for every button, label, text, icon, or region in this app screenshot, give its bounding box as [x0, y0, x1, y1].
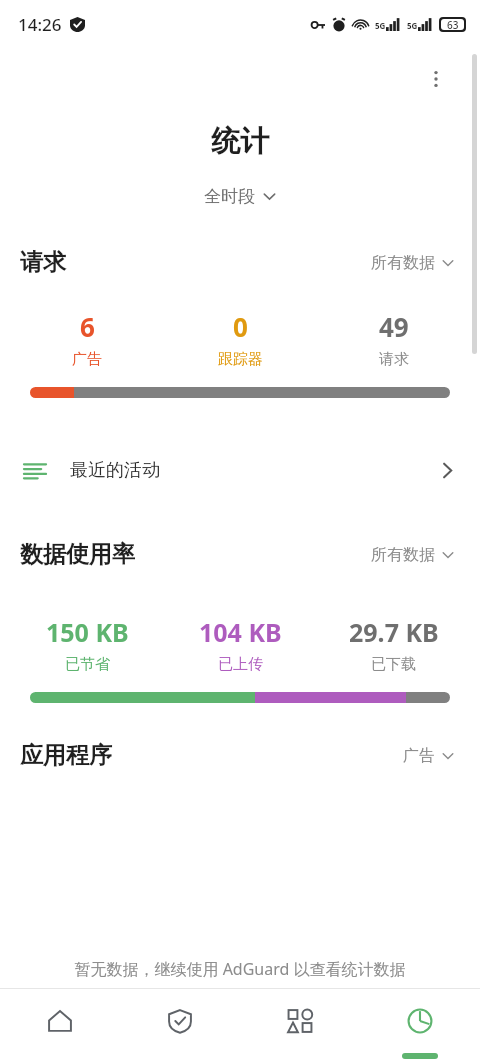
staticText: 14:26 — [18, 13, 62, 36]
staticText: 广告 — [72, 350, 102, 369]
button[interactable]: Home — [0, 989, 120, 1061]
staticText: 所有数据 — [371, 253, 435, 273]
staticText: 150 KB — [46, 615, 129, 649]
button[interactable]: 全时段 — [194, 180, 286, 213]
button[interactable]: Statistics — [360, 989, 480, 1061]
staticText: 请求 — [379, 350, 409, 369]
staticText: 已下载 — [371, 655, 416, 674]
staticText: 应用程序 — [20, 741, 112, 770]
staticText: 29.7 KB — [349, 615, 439, 649]
staticText: 0 — [233, 309, 248, 344]
staticText: 49 — [379, 309, 409, 344]
staticText: 所有数据 — [371, 545, 435, 565]
button[interactable]: Apps — [240, 989, 360, 1061]
staticText: 请求 — [20, 248, 66, 277]
staticText: 104 KB — [199, 615, 282, 649]
staticText: 暂无数据，继续使用 AdGuard 以查看统计数据 — [0, 958, 480, 980]
button[interactable]: 104 KB — [164, 613, 317, 676]
button[interactable]: Protection — [120, 989, 240, 1061]
button[interactable]: 所有数据 — [365, 249, 460, 277]
button[interactable]: 最近的活动 — [0, 442, 480, 498]
staticText: 最近的活动 — [70, 459, 160, 482]
staticText: 已上传 — [218, 655, 263, 674]
staticText: 统计 — [211, 123, 269, 160]
button[interactable]: 6 — [10, 307, 164, 371]
staticText: 63 — [447, 18, 459, 32]
staticText: 5G — [407, 20, 418, 31]
staticText: 6 — [80, 309, 95, 344]
staticText: 已节省 — [65, 655, 110, 674]
button[interactable]: More options — [416, 59, 456, 99]
button[interactable]: 0 — [164, 307, 317, 371]
button[interactable]: 广告 — [397, 742, 460, 770]
button[interactable]: 29.7 KB — [317, 613, 470, 676]
staticText: 跟踪器 — [218, 350, 263, 369]
staticText: 广告 — [403, 746, 435, 766]
staticText: 5G — [375, 20, 386, 31]
button[interactable]: 150 KB — [10, 613, 164, 676]
staticText: 全时段 — [204, 186, 255, 207]
staticText: 数据使用率 — [20, 540, 135, 569]
button[interactable]: 49 — [317, 307, 470, 371]
button[interactable]: 所有数据 — [365, 541, 460, 569]
